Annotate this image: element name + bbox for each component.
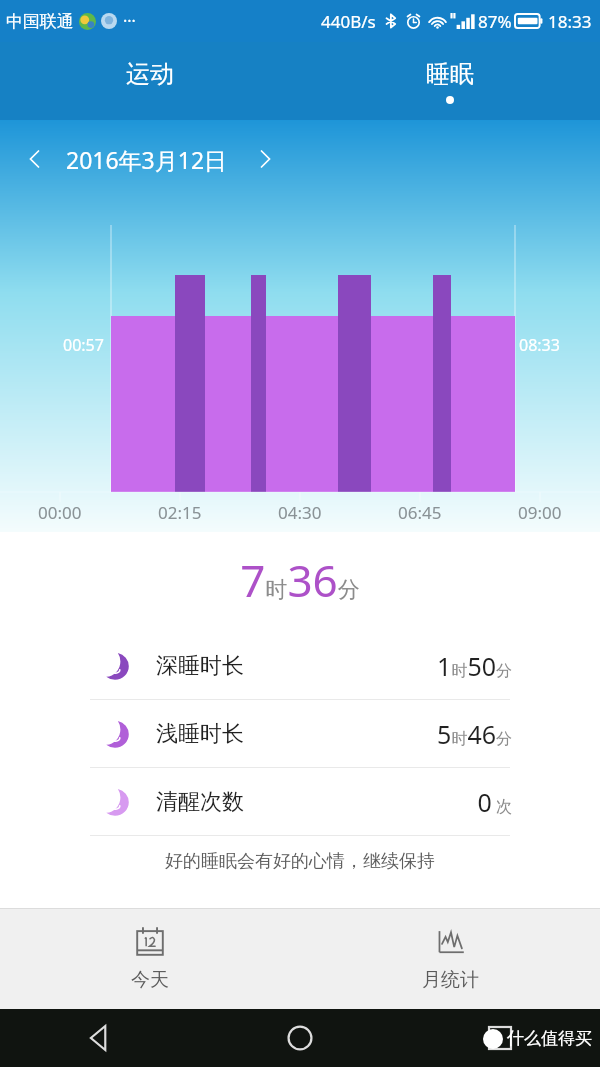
staticText: 浅睡时长 xyxy=(156,720,244,748)
staticText: ··· xyxy=(123,10,136,32)
staticText: 02:15 xyxy=(158,501,202,524)
button[interactable]: 清醒次数 xyxy=(0,768,600,835)
staticText: 00:57 xyxy=(63,334,104,356)
staticText: 5时46分 xyxy=(437,717,512,751)
button[interactable]: 今天 xyxy=(0,909,300,1009)
staticText: 深睡时长 xyxy=(156,652,244,680)
button[interactable]: 运动 xyxy=(0,42,300,120)
button[interactable]: 浅睡时长 xyxy=(0,700,600,767)
staticText: 睡眠 xyxy=(426,59,474,89)
button[interactable]: 月统计 xyxy=(300,909,600,1009)
staticText: 440B/s xyxy=(321,10,376,33)
staticText: 7时36分 xyxy=(240,550,360,610)
staticText: 18:33 xyxy=(548,10,592,33)
staticText: 什么值得买 xyxy=(507,1028,592,1049)
staticText: 清醒次数 xyxy=(156,788,244,816)
button[interactable]: Previous day xyxy=(18,142,52,176)
staticText: 2016年3月12日 xyxy=(66,144,228,175)
staticText: 中国联通 xyxy=(6,11,74,32)
staticText: 今天 xyxy=(131,968,169,992)
staticText: 月统计 xyxy=(422,968,479,992)
button[interactable]: Recents xyxy=(400,1009,600,1067)
staticText: 09:00 xyxy=(518,501,562,524)
staticText: 08:33 xyxy=(519,334,560,356)
staticText: 0 次 xyxy=(477,785,512,819)
staticText: 87% xyxy=(478,10,512,33)
staticText: 00:00 xyxy=(38,501,82,524)
button[interactable]: Home xyxy=(200,1009,400,1067)
staticText: 1时50分 xyxy=(437,649,512,683)
button[interactable]: Next day xyxy=(248,142,282,176)
button[interactable]: Back xyxy=(0,1009,200,1067)
button[interactable]: 深睡时长 xyxy=(0,632,600,699)
staticText: 好的睡眠会有好的心情，继续保持 xyxy=(165,850,435,873)
staticText: 06:45 xyxy=(398,501,442,524)
staticText: 运动 xyxy=(126,59,174,89)
button[interactable]: 睡眠 xyxy=(300,42,600,120)
staticText: 04:30 xyxy=(278,501,322,524)
